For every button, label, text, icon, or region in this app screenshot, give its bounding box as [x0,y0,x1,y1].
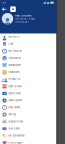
staticText: Fundraisers [8,71,19,73]
staticText: Watch Video [8,92,20,95]
staticText: My Achievements [8,134,25,137]
button[interactable]: Back [1,6,8,12]
staticText: Marketplace [8,64,20,66]
staticText: Friends list [8,78,20,81]
staticText: Information [8,57,20,59]
button[interactable]: Fundraisers [0,69,56,76]
button[interactable]: Chat [0,40,56,47]
button[interactable]: Most Recent [0,104,56,111]
staticText: Setting [8,113,15,116]
staticText: 9:41 [2,1,6,4]
button[interactable]: Event & News [0,83,56,90]
staticText: Ayu Student [15,14,32,17]
staticText: reference No 1 [15,21,29,23]
button[interactable]: Advertisement [0,97,56,104]
button[interactable]: Play Games [0,125,56,132]
staticText: Event & News [8,85,22,88]
staticText: My Timeline [8,50,21,52]
button[interactable]: Ayu Student [0,13,56,24]
button[interactable]: My Achievements [0,132,56,139]
staticText: Most Recent [8,106,20,109]
button[interactable]: My Profile [0,33,56,40]
button[interactable]: Setting [0,111,56,118]
staticText: Chat [8,43,13,45]
button[interactable]: Nearby Friends [0,118,56,125]
staticText: Play Games [8,127,20,130]
staticText: Help & Support [8,141,23,144]
button[interactable]: Watch Video [0,90,56,97]
button[interactable]: Help & Support [0,139,56,144]
staticText: 100 Online • 4 new [15,18,35,20]
button[interactable]: Information [0,55,56,62]
staticText: Advertisement [8,99,22,102]
staticText: Nearby Friends [8,120,23,123]
button[interactable]: Open app [10,6,16,12]
staticText: My Profile [8,36,19,38]
button[interactable]: Friends list [0,76,56,83]
button[interactable]: Marketplace [0,62,56,69]
button[interactable]: My Timeline [0,48,56,55]
